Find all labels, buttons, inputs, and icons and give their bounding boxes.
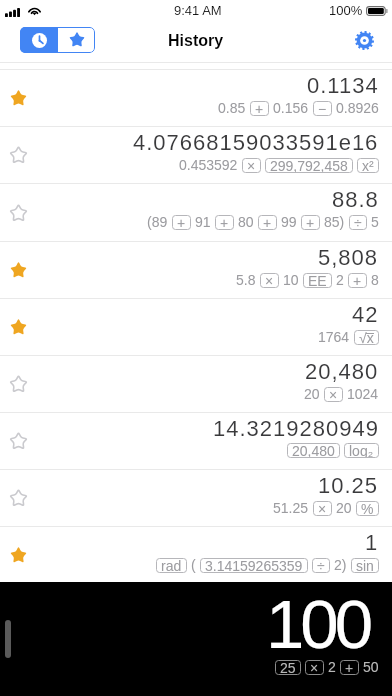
button[interactable]: Favourite — [0, 127, 392, 183]
staticText: 0.1134 — [307, 73, 379, 98]
staticText: 10.25 — [318, 473, 379, 498]
staticText: sin — [356, 558, 374, 573]
staticText: ( — [191, 557, 196, 573]
staticText: rad — [161, 558, 182, 573]
staticText: x² — [362, 158, 374, 173]
button[interactable]: Favourite — [6, 372, 30, 396]
staticText: 1 — [365, 530, 379, 555]
staticText: 1024 — [347, 386, 379, 402]
staticText: 88.8 — [332, 187, 379, 212]
staticText: × — [318, 501, 327, 516]
button[interactable]: Favourite — [6, 201, 30, 225]
button[interactable]: Favourite — [6, 86, 30, 110]
staticText: 50 — [363, 659, 379, 675]
staticText: 91 — [195, 214, 211, 230]
staticText: 20 — [336, 500, 352, 516]
staticText: 10 — [283, 272, 299, 288]
staticText: 51.25 — [273, 500, 309, 516]
staticText: 0.85 — [218, 100, 246, 116]
staticText: (89 — [147, 214, 168, 230]
staticText: + — [345, 660, 354, 675]
staticText: % — [361, 501, 374, 516]
staticText: 5,808 — [318, 245, 379, 270]
staticText: 9:41 AM — [174, 3, 222, 18]
staticText: 5.8 — [236, 272, 256, 288]
staticText: × — [329, 387, 338, 402]
staticText: 20,480 — [292, 443, 335, 458]
button[interactable]: Favourite — [0, 70, 392, 126]
staticText: 0.8926 — [336, 100, 379, 116]
staticText: 20 — [304, 386, 320, 402]
staticText: + — [177, 215, 186, 230]
button[interactable]: Favourite — [6, 429, 30, 453]
button[interactable]: Favourite — [0, 413, 392, 469]
staticText: 20,480 — [305, 359, 379, 384]
staticText: ÷ — [317, 558, 325, 573]
button[interactable]: Favourite — [0, 527, 392, 583]
staticText: 2 — [336, 272, 344, 288]
staticText: History — [168, 32, 224, 50]
staticText: 25 — [280, 660, 296, 675]
staticText: 100% — [329, 3, 363, 18]
button[interactable]: History tab — [20, 27, 58, 53]
staticText: + — [220, 215, 229, 230]
staticText: 5 — [371, 214, 379, 230]
staticText: √x̅ — [359, 330, 374, 345]
staticText: EE — [308, 273, 327, 288]
staticText: − — [318, 101, 327, 116]
staticText: 99 — [281, 214, 297, 230]
button[interactable]: Favourite — [6, 315, 30, 339]
staticText: ÷ — [354, 215, 362, 230]
staticText: 0.453592 — [179, 157, 238, 173]
staticText: × — [247, 158, 256, 173]
staticText: × — [265, 273, 274, 288]
staticText: 8 — [371, 272, 379, 288]
staticText: + — [353, 273, 362, 288]
button[interactable]: Favourite — [0, 242, 392, 298]
staticText: 42 — [352, 302, 379, 327]
staticText: 299,792,458 — [270, 158, 348, 173]
staticText: + — [255, 101, 264, 116]
button[interactable]: Settings — [351, 27, 377, 53]
staticText: 100 — [266, 586, 370, 663]
staticText: 85) — [324, 214, 345, 230]
staticText: 0.156 — [273, 100, 309, 116]
staticText: 80 — [238, 214, 254, 230]
button[interactable]: Favourite — [0, 299, 392, 355]
button[interactable]: Favourite — [0, 356, 392, 412]
staticText: 4.07668159033591e16 — [133, 130, 379, 155]
staticText: + — [306, 215, 315, 230]
button[interactable]: Favourite — [6, 143, 30, 167]
staticText: 1764 — [318, 329, 350, 345]
staticText: + — [263, 215, 272, 230]
staticText: 3.14159265359 — [205, 558, 303, 573]
button[interactable]: Favourite — [6, 543, 30, 567]
staticText: × — [310, 660, 319, 675]
button[interactable]: Favourite — [6, 258, 30, 282]
staticText: log₂ — [349, 443, 374, 458]
button[interactable]: Favourite — [0, 184, 392, 241]
button[interactable]: Favourite — [0, 470, 392, 526]
button[interactable]: Favourites tab — [58, 27, 95, 53]
button[interactable]: Favourite — [6, 486, 30, 510]
staticText: 2 — [328, 659, 336, 675]
staticText: 2) — [334, 557, 347, 573]
staticText: 14.3219280949 — [213, 416, 379, 441]
